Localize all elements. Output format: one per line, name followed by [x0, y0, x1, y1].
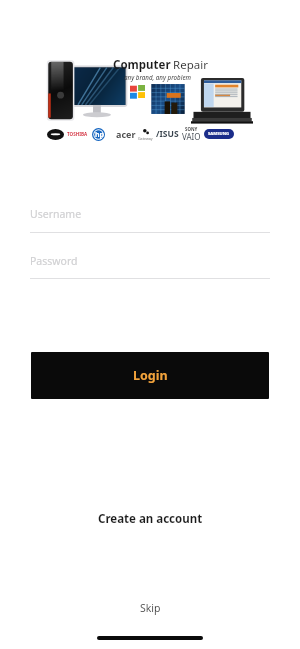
staticText: SONY: [185, 126, 198, 132]
staticText: TOSHIBA: [67, 131, 88, 137]
staticText: Username: [30, 207, 82, 221]
button[interactable]: Skip: [110, 596, 190, 620]
button[interactable]: Login: [31, 352, 269, 399]
staticText: hp: [95, 130, 104, 140]
staticText: Create an account: [98, 511, 203, 527]
staticText: Login: [133, 367, 168, 384]
button[interactable]: Username: [30, 203, 270, 235]
staticText: acer: [116, 128, 136, 140]
staticText: Computer: [113, 57, 171, 73]
staticText: SAMSUNG: [208, 131, 230, 137]
staticText: /ISUS: [156, 128, 179, 140]
staticText: VAIO: [182, 131, 201, 141]
button[interactable]: Create an account: [60, 506, 240, 532]
staticText: Password: [30, 254, 78, 268]
staticText: Gateway: [138, 136, 153, 141]
other: Computer Repair banner: [45, 54, 253, 146]
button[interactable]: Password: [30, 250, 270, 282]
staticText: Skip: [140, 601, 161, 615]
staticText: Repair: [173, 57, 208, 73]
staticText: any brand, any problem: [124, 73, 192, 81]
